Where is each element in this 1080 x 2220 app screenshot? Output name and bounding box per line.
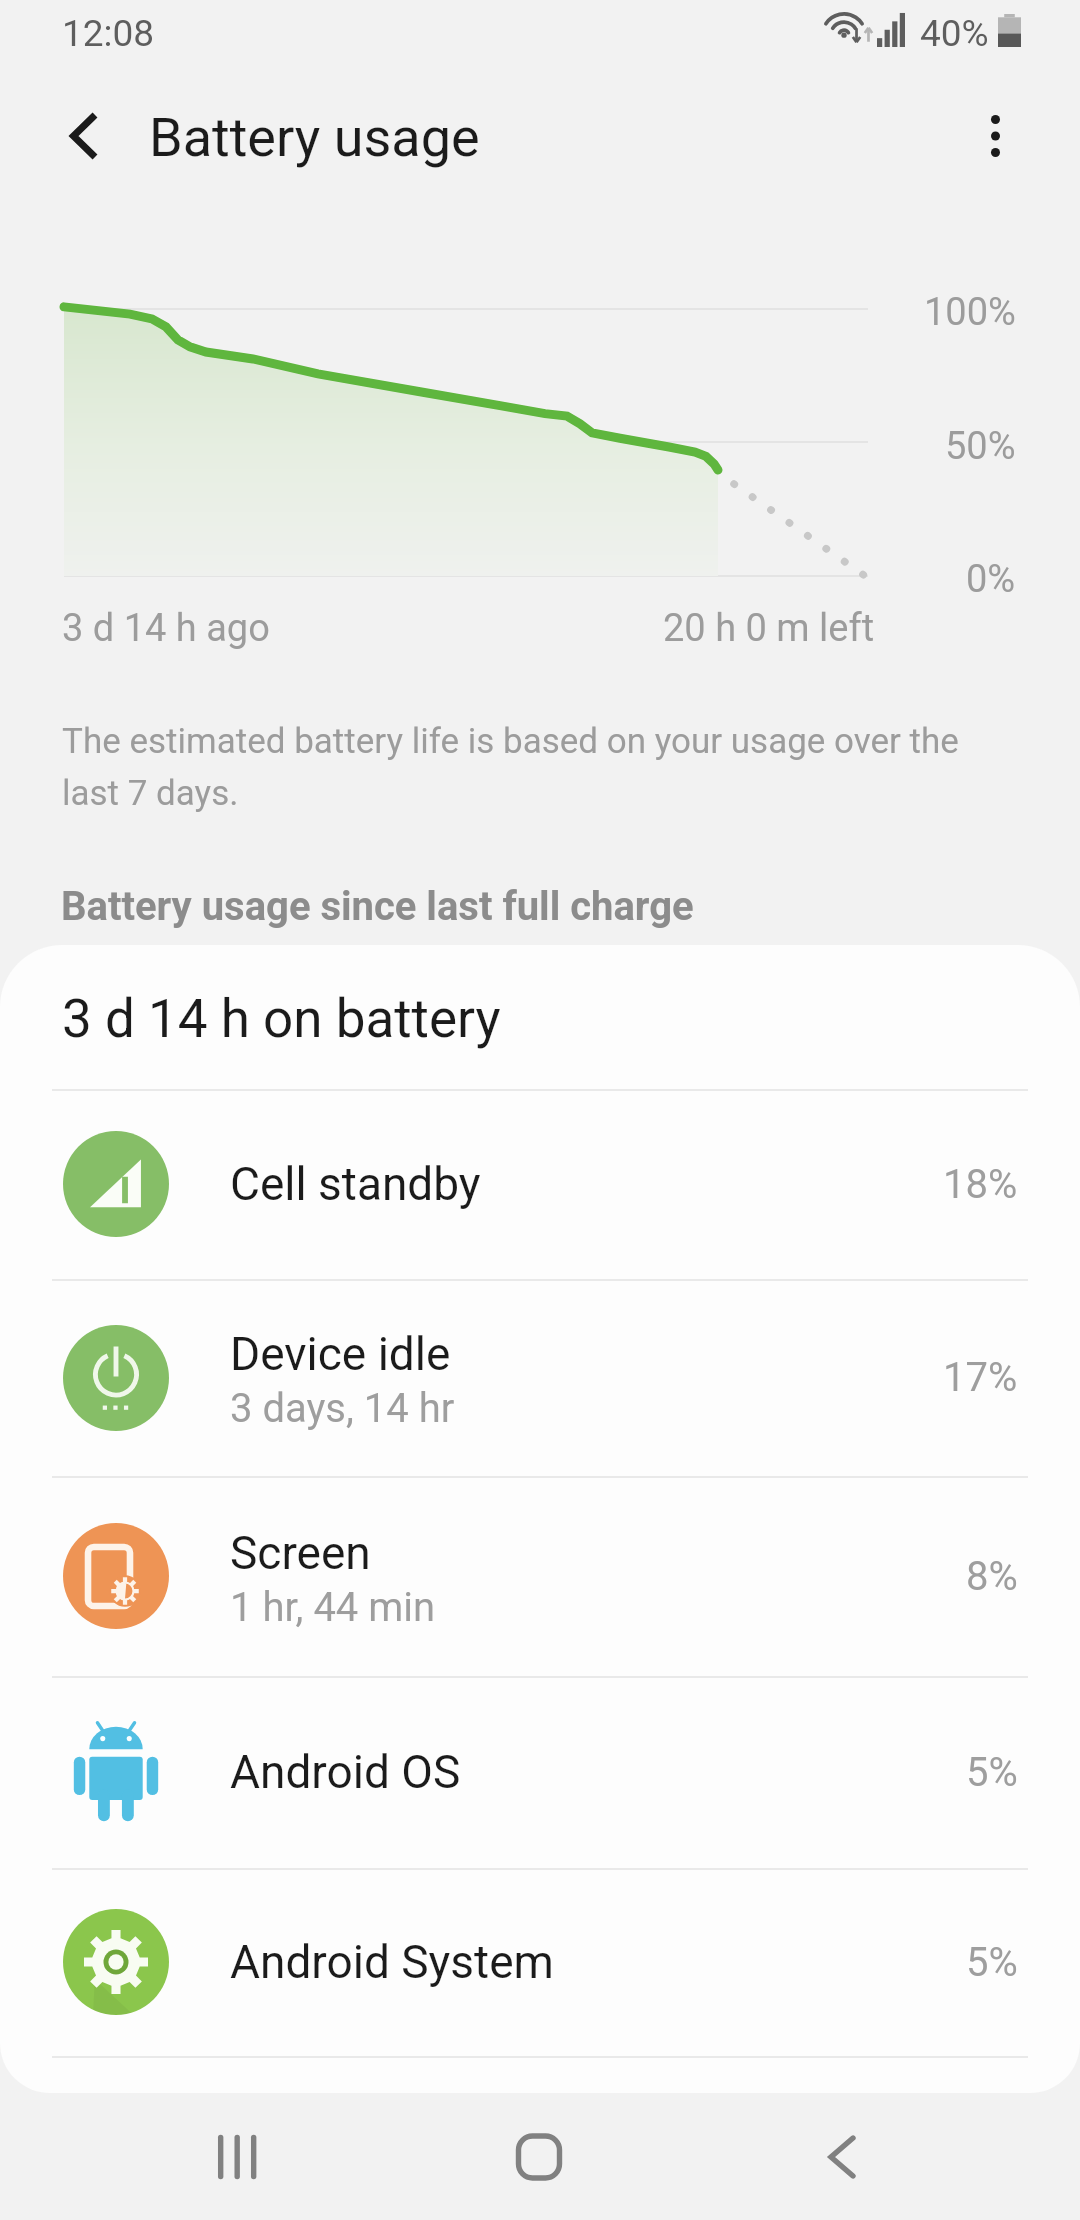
staticText: 18% [943,1161,1018,1208]
staticText: 3 days, 14 hr [230,1385,455,1432]
staticText: 5% [966,1749,1018,1796]
staticText: 3 d 14 h ago [62,606,270,651]
staticText: 12:08 [62,12,155,55]
staticText: Android OS [230,1745,461,1799]
staticText: Battery usage [149,106,480,169]
button[interactable]: Screen [0,1476,1080,1676]
staticText: Device idle [230,1327,451,1381]
staticText: Cell standby [230,1157,481,1211]
staticText: Screen [230,1526,371,1580]
staticText: The estimated battery life is based on y… [62,721,959,814]
button[interactable]: Home [449,2094,629,2220]
button[interactable]: Back [752,2094,932,2220]
staticText: 20 h 0 m left [663,606,875,651]
staticText: 17% [943,1354,1018,1401]
staticText: 100% [924,290,1016,335]
button[interactable]: More options [926,67,1064,205]
staticText: 1 hr, 44 min [230,1584,436,1631]
staticText: 40% [920,12,989,55]
staticText: Android System [230,1935,554,1989]
staticText: 0% [966,557,1016,602]
staticText: 3 d 14 h on battery [62,988,501,1050]
staticText: 8% [966,1553,1018,1600]
button[interactable]: Android OS [0,1676,1080,1868]
button[interactable]: Device idle [0,1279,1080,1476]
button[interactable]: Cell standby [0,1089,1080,1279]
staticText: Battery usage since last full charge [61,883,694,930]
button[interactable]: Navigate up [14,67,152,205]
staticText: 50% [945,424,1016,469]
button[interactable]: Android System [0,1868,1080,2056]
button[interactable]: Recent apps [147,2094,327,2220]
staticText: 5% [966,1939,1018,1986]
